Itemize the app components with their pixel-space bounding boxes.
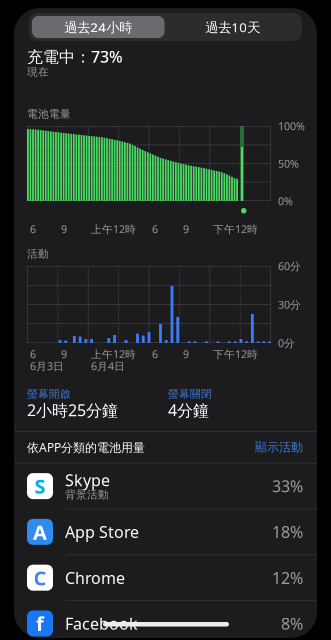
staticText: 背景活動 <box>65 488 109 501</box>
staticText: 下午12時 <box>213 222 258 236</box>
staticText: 下午12時 <box>213 347 258 361</box>
staticText: S <box>34 473 45 499</box>
staticText: 9 <box>183 222 189 236</box>
staticText: 6月4日 <box>91 359 125 373</box>
staticText: f <box>36 610 44 637</box>
staticText: 2小時25分鐘 <box>27 399 118 421</box>
button[interactable]: S <box>14 464 317 509</box>
staticText: 過去24小時 <box>64 18 132 36</box>
staticText: 8% <box>281 613 303 634</box>
staticText: 過去10天 <box>205 18 260 36</box>
staticText: 現在 <box>27 65 49 78</box>
staticText: 50% <box>278 156 299 171</box>
staticText: 9 <box>61 347 67 361</box>
staticText: 0分 <box>278 336 295 350</box>
staticText: C <box>33 564 46 591</box>
staticText: 依APP分類的電池用量 <box>27 439 145 455</box>
button[interactable]: C <box>14 555 317 600</box>
staticText: 6 <box>152 222 158 236</box>
staticText: 上午12時 <box>91 222 136 236</box>
staticText: 活動 <box>27 247 49 260</box>
staticText: 12% <box>272 567 303 588</box>
staticText: 上午12時 <box>91 347 136 361</box>
staticText: 33% <box>272 475 303 497</box>
staticText: 9 <box>183 347 189 361</box>
staticText: 螢幕開啟 <box>27 387 71 400</box>
button[interactable]: 過去24小時 <box>32 16 164 38</box>
button[interactable]: f <box>14 601 317 640</box>
button[interactable]: 顯示活動 <box>255 440 303 455</box>
button[interactable]: A <box>14 509 317 554</box>
staticText: App Store <box>65 521 139 542</box>
staticText: 30分 <box>278 297 301 312</box>
staticText: Facebook <box>65 613 138 634</box>
staticText: 6月3日 <box>30 359 64 373</box>
staticText: 100% <box>278 119 305 133</box>
staticText: 60分 <box>278 259 301 273</box>
staticText: 充電中：73% <box>27 46 123 67</box>
staticText: 6 <box>152 347 158 361</box>
staticText: 6 <box>30 222 36 236</box>
staticText: 4分鐘 <box>168 399 209 421</box>
staticText: 顯示活動 <box>255 440 303 455</box>
staticText: 0% <box>278 194 293 208</box>
staticText: Skype <box>65 469 110 491</box>
staticText: 電池電量 <box>27 107 71 120</box>
button[interactable]: 過去10天 <box>166 16 299 38</box>
staticText: 6 <box>30 347 36 361</box>
staticText: A <box>33 519 47 545</box>
staticText: Chrome <box>65 567 125 588</box>
staticText: 18% <box>272 521 303 542</box>
staticText: 9 <box>61 222 67 236</box>
staticText: 螢幕關閉 <box>168 387 212 400</box>
